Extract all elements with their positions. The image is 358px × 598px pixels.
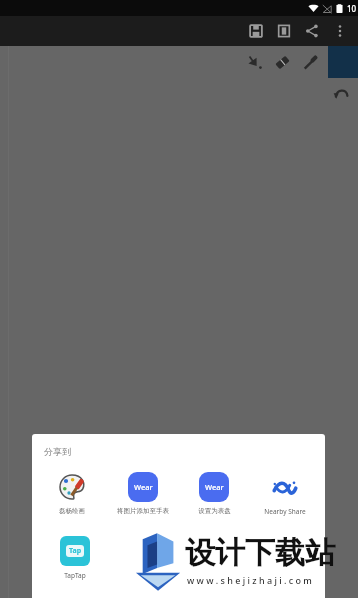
- button[interactable]: Undo: [328, 80, 354, 106]
- staticText: w w w . s h e j i z h a j i . c o m: [187, 574, 312, 586]
- staticText: Wear: [134, 482, 153, 492]
- button[interactable]: Nearby Share: [254, 470, 316, 518]
- staticText: Wear: [205, 482, 224, 492]
- staticText: 分享到: [44, 446, 71, 457]
- button[interactable]: Eraser: [268, 48, 296, 76]
- staticText: 磊杨绘画: [59, 507, 85, 515]
- button[interactable]: More options: [326, 17, 354, 45]
- button[interactable]: Share: [298, 17, 326, 45]
- button[interactable]: Color picker: [296, 48, 324, 76]
- staticText: 10: [347, 3, 357, 14]
- staticText: 设置为表盘: [198, 507, 231, 515]
- button[interactable]: Wear: [183, 470, 245, 517]
- button[interactable]: Save: [242, 17, 270, 45]
- staticText: Nearby Share: [264, 507, 306, 516]
- button[interactable]: Fill: [240, 48, 268, 76]
- button[interactable]: Wear: [112, 470, 174, 517]
- staticText: TapTap: [64, 571, 86, 580]
- button[interactable]: 磊杨绘画: [41, 470, 103, 517]
- staticText: 将图片添加至手表: [117, 507, 169, 515]
- button[interactable]: Layers: [270, 17, 298, 45]
- staticText: Tap: [69, 546, 82, 556]
- staticText: 设计下载站: [185, 534, 335, 572]
- button[interactable]: Tap: [44, 534, 106, 582]
